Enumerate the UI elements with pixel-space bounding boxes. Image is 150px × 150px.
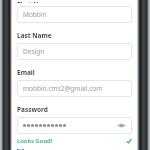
button[interactable]: Mobbin: [17, 6, 132, 23]
button[interactable]: mobbin.cms2@gmail.com: [17, 80, 132, 97]
staticText: Password: [17, 105, 48, 114]
button[interactable]: Design: [17, 43, 132, 60]
staticText: Email: [17, 68, 35, 77]
button[interactable]: I certify that I am 18 years of age or: [17, 149, 132, 150]
staticText: First Name: [17, 0, 53, 3]
staticText: Last Name: [17, 31, 52, 40]
staticText: Design: [23, 47, 126, 56]
button[interactable]: Show password: [17, 117, 132, 134]
button[interactable]: Show password: [117, 121, 126, 130]
staticText: Mobbin: [23, 10, 126, 19]
staticText: mobbin.cms2@gmail.com: [23, 84, 126, 93]
staticText: Looks Good!: [17, 137, 126, 145]
